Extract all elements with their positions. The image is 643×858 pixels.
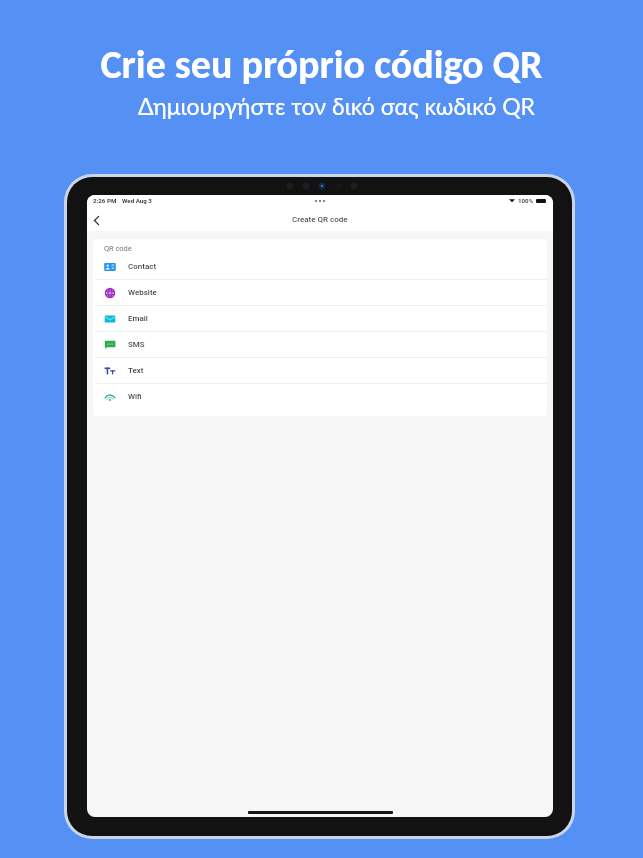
button[interactable]: Text (93, 358, 547, 383)
button[interactable]: Website (93, 280, 547, 305)
staticText: Contact (128, 262, 157, 271)
button[interactable]: Back (88, 212, 104, 228)
staticText: Wifi (128, 392, 142, 401)
staticText: Create QR code (292, 215, 348, 224)
button[interactable]: SMS (93, 332, 547, 357)
staticText: Text (128, 366, 144, 375)
staticText: QR code (104, 244, 132, 253)
staticText: 2:26 PM (93, 197, 117, 204)
button[interactable]: Contact (93, 254, 547, 279)
staticText: Website (128, 288, 157, 297)
staticText: 100% (518, 197, 534, 204)
staticText: Wed Aug 3 (122, 197, 152, 204)
button[interactable]: Email (93, 306, 547, 331)
button[interactable]: Wifi (93, 384, 547, 409)
staticText: Δημιουργήστε τον δικό σας κωδικό QR (15, 92, 643, 120)
staticText: Crie seu próprio código QR (0, 40, 643, 89)
staticText: Email (128, 314, 148, 323)
staticText: SMS (128, 340, 145, 349)
